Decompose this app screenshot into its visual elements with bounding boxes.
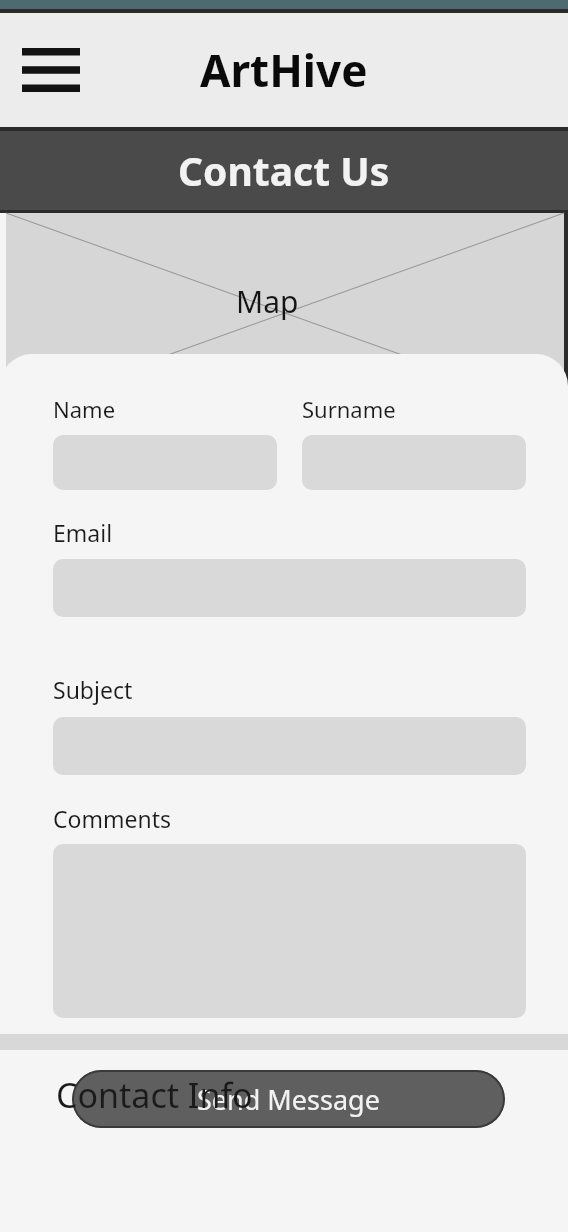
staticText: Comments [53, 803, 171, 834]
button[interactable]: Open navigation menu [12, 31, 90, 109]
button[interactable]: Send Message [72, 1070, 505, 1128]
staticText: Map [236, 281, 299, 322]
staticText: Subject [53, 674, 133, 705]
staticText: Contact Us [178, 144, 390, 197]
staticText: ArtHive [200, 40, 368, 100]
staticText: Email [53, 517, 113, 548]
button[interactable]: Map [6, 213, 564, 413]
staticText: Name [53, 394, 116, 424]
staticText: Send Message [197, 1081, 380, 1118]
staticText: Contact Info [56, 1072, 253, 1118]
staticText: Surname [302, 394, 396, 424]
